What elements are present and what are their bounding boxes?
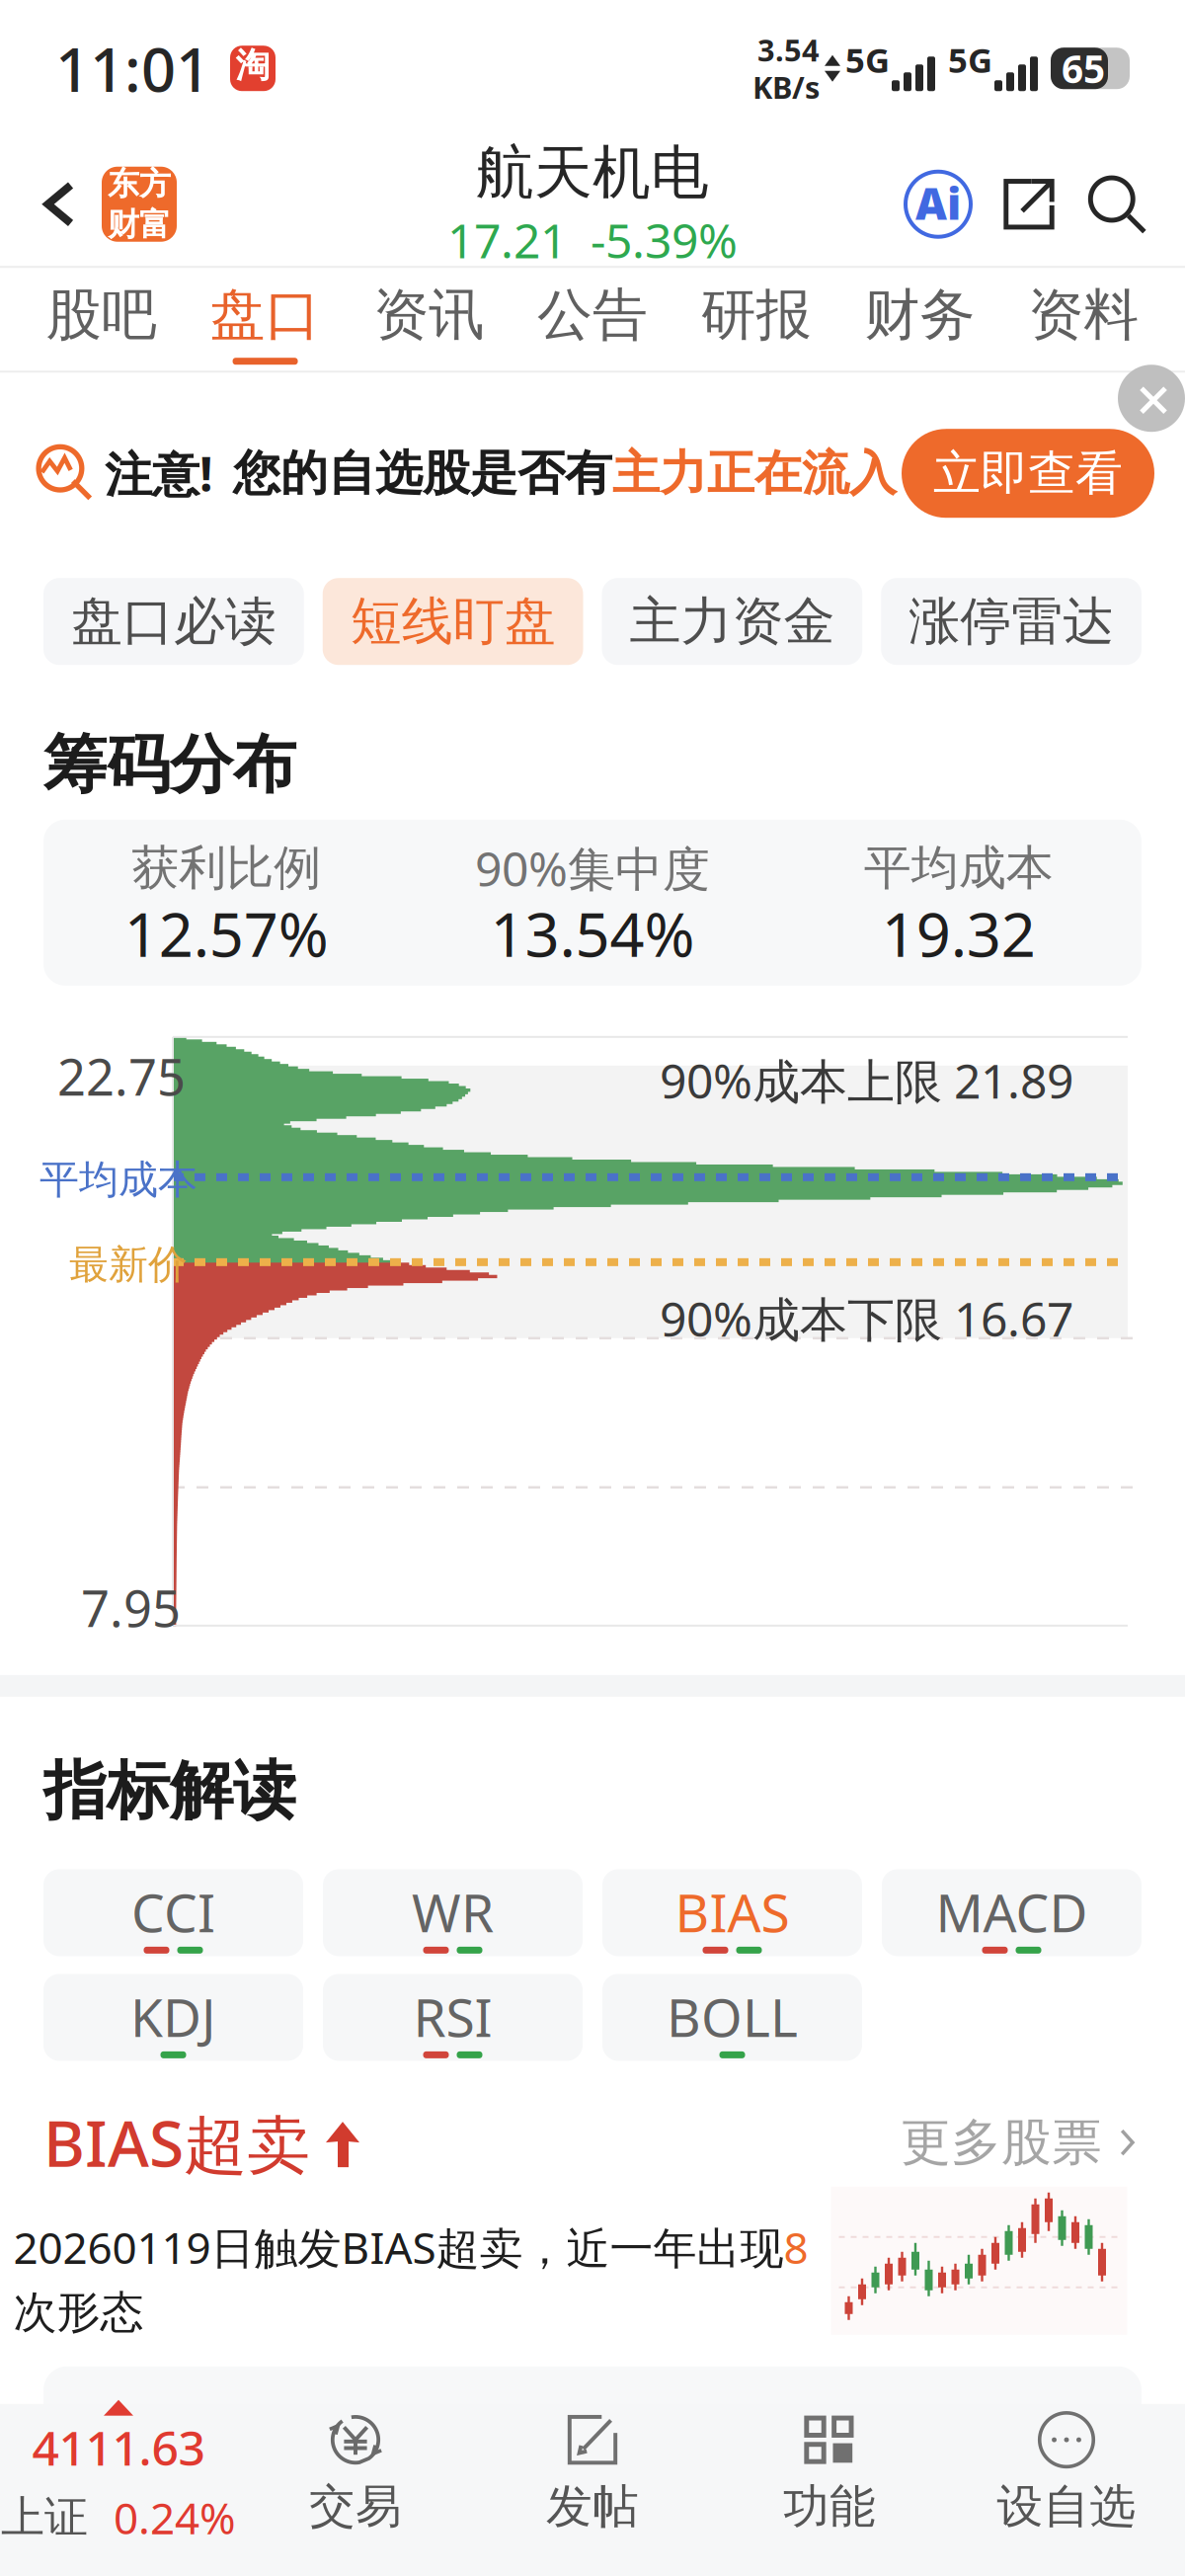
staticText: 上证 [1, 2491, 88, 2544]
button[interactable]: 返回 [22, 150, 97, 258]
button[interactable]: BOLL [602, 1974, 862, 2061]
staticText: 90%集中度 [475, 837, 710, 900]
staticText: 8 [784, 2218, 808, 2276]
staticText: 盘口必读 [71, 590, 276, 653]
staticText: 20260119日触发BIAS超卖，近一年出现 [13, 2218, 784, 2276]
staticText: 17.21 [447, 208, 567, 271]
staticText: -5.39% [591, 208, 738, 271]
staticText: 公告 [537, 281, 648, 349]
button[interactable]: 东方财富 [97, 150, 182, 258]
staticText: 指标解读 [43, 1752, 296, 1830]
button[interactable]: 研报 [674, 268, 838, 371]
button[interactable]: MACD [882, 1869, 1142, 1956]
button[interactable]: 公告 [511, 268, 674, 371]
staticText: 7.95 [81, 1574, 181, 1641]
staticText: 涨停雷达 [909, 590, 1114, 653]
staticText: 11:01 [55, 28, 210, 109]
button[interactable]: 设自选 [948, 2411, 1185, 2535]
staticText: BIAS超卖 [43, 2100, 310, 2185]
staticText: BIAS [675, 1877, 790, 1947]
staticText: 航天机电 [476, 137, 709, 208]
button[interactable]: 分享 [984, 150, 1074, 258]
staticText: 设自选 [997, 2478, 1136, 2535]
staticText: KDJ [130, 1981, 216, 2051]
staticText: 注意! [105, 442, 213, 505]
staticText: BOLL [667, 1981, 798, 2051]
button[interactable]: 短线盯盘 [323, 578, 583, 665]
button[interactable]: AI助手 [893, 150, 984, 258]
staticText: 财务 [864, 281, 975, 349]
staticText: 平均成本 [864, 839, 1053, 897]
button[interactable]: 涨停雷达 [881, 578, 1142, 665]
staticText: MACD [936, 1877, 1088, 1947]
staticText: 主力资金 [629, 590, 835, 653]
staticText: 90%成本下限 16.67 [660, 1287, 1073, 1350]
button[interactable]: 交易 [237, 2411, 474, 2535]
staticText: 更多股票 [901, 2112, 1102, 2173]
button[interactable]: CCI [43, 1869, 303, 1956]
staticText: 研报 [701, 281, 811, 349]
button[interactable]: 关闭 [1120, 373, 1185, 424]
staticText: 资料 [1028, 281, 1139, 349]
staticText: 5G [948, 37, 992, 82]
staticText: 65 [1062, 43, 1105, 94]
staticText: 东方 [108, 164, 171, 203]
staticText: 立即查看 [933, 444, 1123, 503]
staticText: 13.54% [490, 893, 695, 973]
staticText: 短线盯盘 [350, 590, 556, 653]
staticText: 股吧 [46, 281, 157, 349]
staticText: 交易 [309, 2478, 402, 2535]
button[interactable]: 功能 [711, 2411, 948, 2535]
button[interactable]: 主力资金 [602, 578, 862, 665]
staticText: 平均成本 [39, 1155, 197, 1204]
staticText: 22.75 [57, 1043, 186, 1109]
staticText: WR [412, 1877, 494, 1947]
staticText: 资讯 [374, 281, 484, 349]
staticText: Ai [915, 174, 961, 232]
staticText: 您的自选股是否有 [233, 444, 612, 503]
button[interactable]: BIAS [602, 1869, 862, 1956]
button[interactable]: RSI [323, 1974, 583, 2061]
staticText: 19.32 [882, 893, 1036, 973]
staticText: CCI [131, 1877, 215, 1947]
staticText: 最新价 [69, 1240, 188, 1289]
button[interactable]: 资讯 [347, 268, 511, 371]
button[interactable]: 4111.63 [0, 2400, 237, 2546]
staticText: 4111.63 [32, 2416, 205, 2479]
staticText: 获利比例 [132, 839, 321, 897]
staticText: 功能 [783, 2478, 876, 2535]
staticText: 3.54 [757, 30, 820, 70]
staticText: 90%成本上限 21.89 [660, 1049, 1073, 1112]
staticText: 筹码分布 [43, 726, 296, 804]
button[interactable]: WR [323, 1869, 583, 1956]
staticText: 12.57% [124, 893, 329, 973]
button[interactable]: 盘口 [183, 268, 347, 371]
button[interactable]: 盘口必读 [43, 578, 304, 665]
button[interactable]: 股吧 [20, 268, 183, 371]
staticText: 盘口 [210, 281, 321, 349]
button[interactable]: 发帖 [474, 2411, 711, 2535]
staticText: 0.24% [114, 2488, 236, 2546]
button[interactable]: 搜索 [1074, 150, 1159, 258]
staticText: 5G [845, 37, 890, 82]
staticText: 财富 [108, 205, 171, 244]
staticText: 次形态 [13, 2286, 144, 2339]
button[interactable]: KDJ [43, 1974, 303, 2061]
staticText: KB/s [752, 67, 820, 107]
button[interactable]: 立即查看 [902, 429, 1154, 518]
button[interactable]: 财务 [838, 268, 1002, 371]
button[interactable]: 更多股票 [901, 2112, 1142, 2173]
staticText: RSI [413, 1981, 492, 2051]
button[interactable]: 资料 [1002, 268, 1165, 371]
staticText: 发帖 [546, 2478, 639, 2535]
staticText: 主力正在流入 [612, 444, 897, 503]
staticText: 淘 [236, 44, 270, 86]
